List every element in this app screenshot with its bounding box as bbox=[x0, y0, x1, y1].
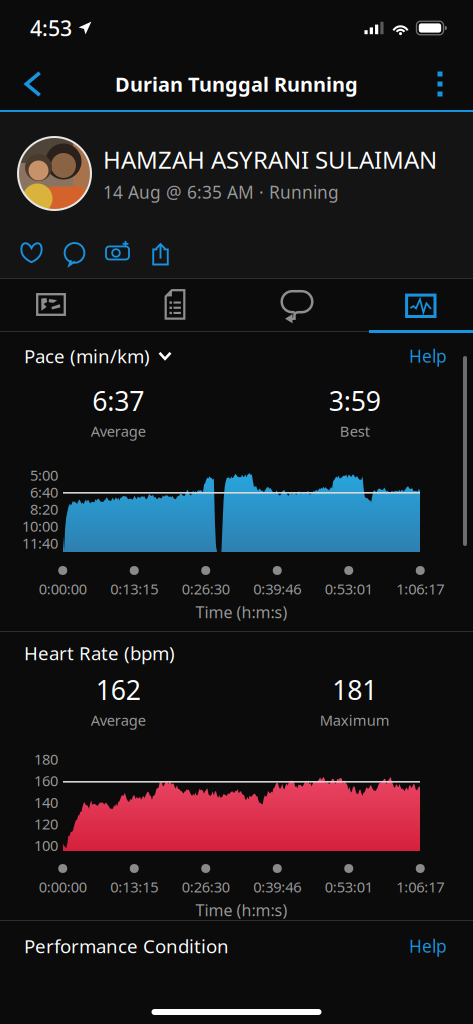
button[interactable]: Share bbox=[139, 233, 182, 275]
staticText: 180 bbox=[34, 749, 58, 769]
button[interactable]: Help bbox=[409, 340, 447, 371]
button[interactable]: Comment bbox=[53, 233, 96, 275]
staticText: 1:06:17 bbox=[396, 877, 444, 896]
staticText: 11:40 bbox=[22, 533, 58, 553]
staticText: 0:39:46 bbox=[253, 877, 301, 896]
staticText: 0:13:15 bbox=[110, 579, 158, 598]
staticText: 0:00:00 bbox=[39, 877, 87, 896]
staticText: Heart Rate (bpm) bbox=[24, 641, 175, 665]
staticText: 6:40 bbox=[30, 482, 58, 502]
staticText: 181 bbox=[332, 672, 377, 707]
staticText: 162 bbox=[96, 672, 141, 707]
button[interactable]: Charts bbox=[362, 279, 473, 333]
staticText: Performance Condition bbox=[24, 934, 229, 958]
staticText: 10:00 bbox=[22, 516, 58, 536]
staticText: Best bbox=[340, 421, 370, 441]
staticText: 6:37 bbox=[92, 383, 144, 418]
button[interactable]: More options bbox=[412, 57, 468, 111]
button[interactable]: Details bbox=[116, 279, 234, 330]
button[interactable]: Performance Condition bbox=[0, 921, 473, 971]
staticText: 8:20 bbox=[30, 499, 58, 519]
staticText: Help bbox=[409, 934, 447, 957]
staticText: 1:06:17 bbox=[396, 579, 444, 598]
staticText: 100 bbox=[34, 836, 58, 855]
button[interactable]: Laps bbox=[238, 279, 356, 330]
staticText: 4:53 bbox=[30, 14, 72, 42]
staticText: Average bbox=[91, 710, 146, 730]
staticText: 0:53:01 bbox=[325, 877, 373, 896]
staticText: Pace (min/km) bbox=[24, 344, 150, 368]
staticText: 0:13:15 bbox=[110, 877, 158, 896]
staticText: Durian Tunggal Running bbox=[115, 71, 358, 97]
staticText: 0:26:30 bbox=[182, 579, 230, 598]
staticText: Time (h:m:s) bbox=[195, 899, 287, 921]
staticText: Average bbox=[91, 421, 146, 441]
staticText: 120 bbox=[34, 814, 58, 834]
staticText: 0:00:00 bbox=[39, 579, 87, 598]
staticText: Time (h:m:s) bbox=[195, 601, 287, 623]
staticText: 14 Aug @ 6:35 AM · Running bbox=[103, 180, 339, 203]
staticText: 160 bbox=[34, 771, 58, 790]
staticText: 3:59 bbox=[329, 383, 381, 418]
staticText: 140 bbox=[34, 792, 58, 812]
button[interactable]: Like bbox=[10, 233, 53, 275]
staticText: 0:39:46 bbox=[253, 579, 301, 598]
staticText: Maximum bbox=[320, 710, 390, 730]
staticText: Help bbox=[409, 344, 447, 367]
button[interactable]: Add photo bbox=[96, 233, 139, 275]
button[interactable]: Map bbox=[0, 279, 110, 330]
staticText: 5:00 bbox=[30, 465, 58, 485]
staticText: HAMZAH ASYRANI SULAIMAN bbox=[103, 144, 437, 175]
staticText: 0:53:01 bbox=[325, 579, 373, 598]
staticText: 0:26:30 bbox=[182, 877, 230, 896]
button[interactable]: Back bbox=[5, 57, 61, 111]
